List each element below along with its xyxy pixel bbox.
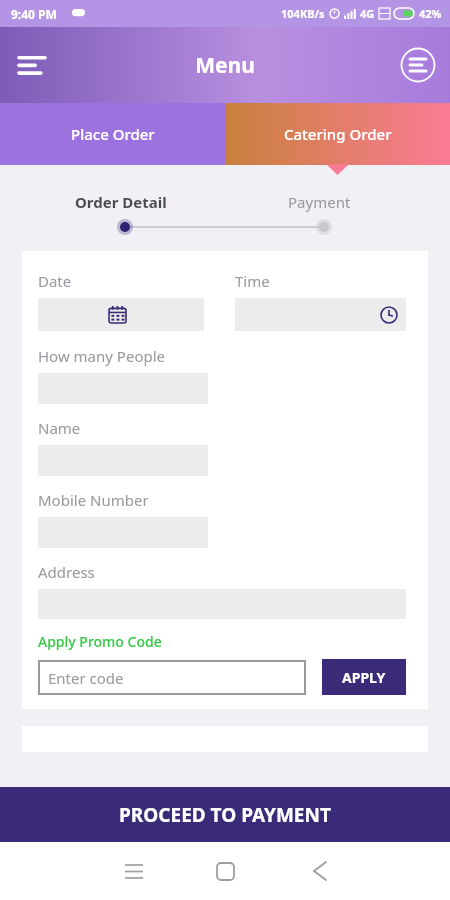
staticText: Menu xyxy=(195,51,255,80)
button[interactable]: Back xyxy=(298,849,342,893)
staticText: 104KB/s xyxy=(281,6,325,21)
staticText: 42% xyxy=(419,6,442,21)
staticText: How many People xyxy=(38,346,166,366)
staticText: Address xyxy=(38,562,95,582)
staticText: Order Detail xyxy=(75,192,167,212)
button[interactable]: Apply Promo Code xyxy=(38,632,162,651)
staticText: 9:40 PM xyxy=(11,6,57,22)
staticText: Time xyxy=(235,271,270,291)
staticText: Apply Promo Code xyxy=(38,632,162,651)
button[interactable]: Home xyxy=(203,849,247,893)
staticText: Catering Order xyxy=(284,124,392,144)
button[interactable]: Place Order xyxy=(0,103,225,165)
staticText: Name xyxy=(38,418,81,438)
button[interactable]: Open navigation menu xyxy=(10,43,54,87)
button[interactable]: PROCEED TO PAYMENT xyxy=(0,787,450,842)
staticText: Enter code xyxy=(48,668,124,688)
staticText: 4G xyxy=(360,6,375,21)
button[interactable]: APPLY xyxy=(322,659,406,695)
staticText: APPLY xyxy=(342,668,386,687)
staticText: Mobile Number xyxy=(38,490,149,510)
staticText: Place Order xyxy=(71,124,155,144)
staticText: Payment xyxy=(288,192,351,212)
button[interactable]: Catering Order xyxy=(225,103,450,165)
staticText: PROCEED TO PAYMENT xyxy=(119,802,331,828)
staticText: Date xyxy=(38,271,72,291)
button[interactable]: Menu options xyxy=(399,46,437,84)
button[interactable]: Recent apps xyxy=(112,849,156,893)
button[interactable]: Enter promo code xyxy=(38,660,306,695)
button[interactable]: Pick time xyxy=(235,298,406,331)
button[interactable]: Pick date xyxy=(38,298,204,331)
